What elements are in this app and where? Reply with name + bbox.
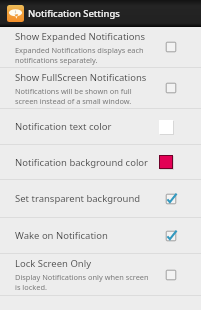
button[interactable]: Lock Screen Only <box>0 254 201 295</box>
staticText: Notification background color <box>15 156 149 169</box>
button[interactable]: Show FullScreen Notifications <box>0 68 201 108</box>
button[interactable]: Notification background color <box>0 145 201 179</box>
button[interactable]: Wake on Notification <box>0 218 201 253</box>
button[interactable]: Set transparent background <box>0 180 201 217</box>
staticText: Display Notifications only when screen i… <box>15 272 151 292</box>
staticText: Notification Settings <box>28 7 120 20</box>
staticText: Lock Screen Only <box>15 257 91 270</box>
staticText: Expanded Notifications displays each not… <box>15 45 151 65</box>
staticText: Notification text color <box>15 120 112 133</box>
staticText: Notifications will be shown on full scre… <box>15 86 151 106</box>
button[interactable]: Notification text color <box>0 109 201 144</box>
button[interactable]: Notification Settings <box>0 0 201 27</box>
staticText: Set transparent background <box>15 192 141 205</box>
staticText: Show FullScreen Notifications <box>15 71 147 84</box>
staticText: Show Expanded Notifications <box>15 30 145 43</box>
button[interactable]: Show Expanded Notifications <box>0 27 201 67</box>
staticText: Wake on Notification <box>15 229 108 242</box>
